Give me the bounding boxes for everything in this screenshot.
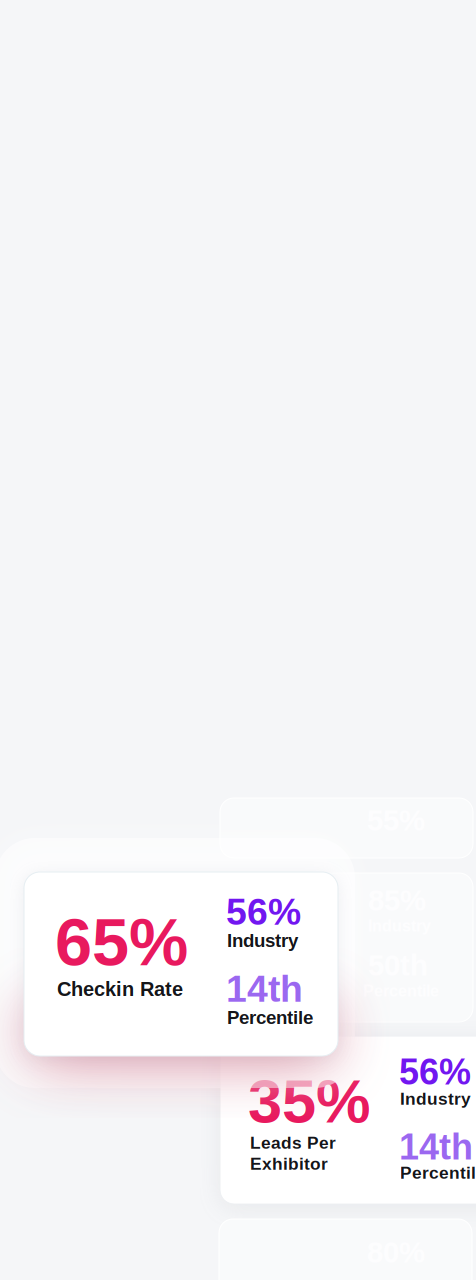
staticText: Percentile — [400, 1163, 476, 1182]
button[interactable]: 35% — [220, 1036, 476, 1204]
staticText: 35% — [248, 1067, 371, 1135]
staticText: 56% — [226, 891, 301, 933]
staticText: Percentile — [227, 1007, 313, 1028]
staticText: Leads Per — [250, 1133, 336, 1152]
staticText: Industry — [400, 1089, 471, 1108]
staticText: Exhibitor — [250, 1154, 328, 1173]
staticText: 14th — [226, 968, 303, 1010]
staticText: 65% — [55, 905, 188, 979]
staticText: 56% — [399, 1052, 471, 1092]
staticText: Industry — [227, 930, 298, 951]
button[interactable]: 65% — [24, 872, 338, 1056]
staticText: 14th — [399, 1127, 473, 1167]
staticText: Checkin Rate — [57, 978, 183, 1000]
